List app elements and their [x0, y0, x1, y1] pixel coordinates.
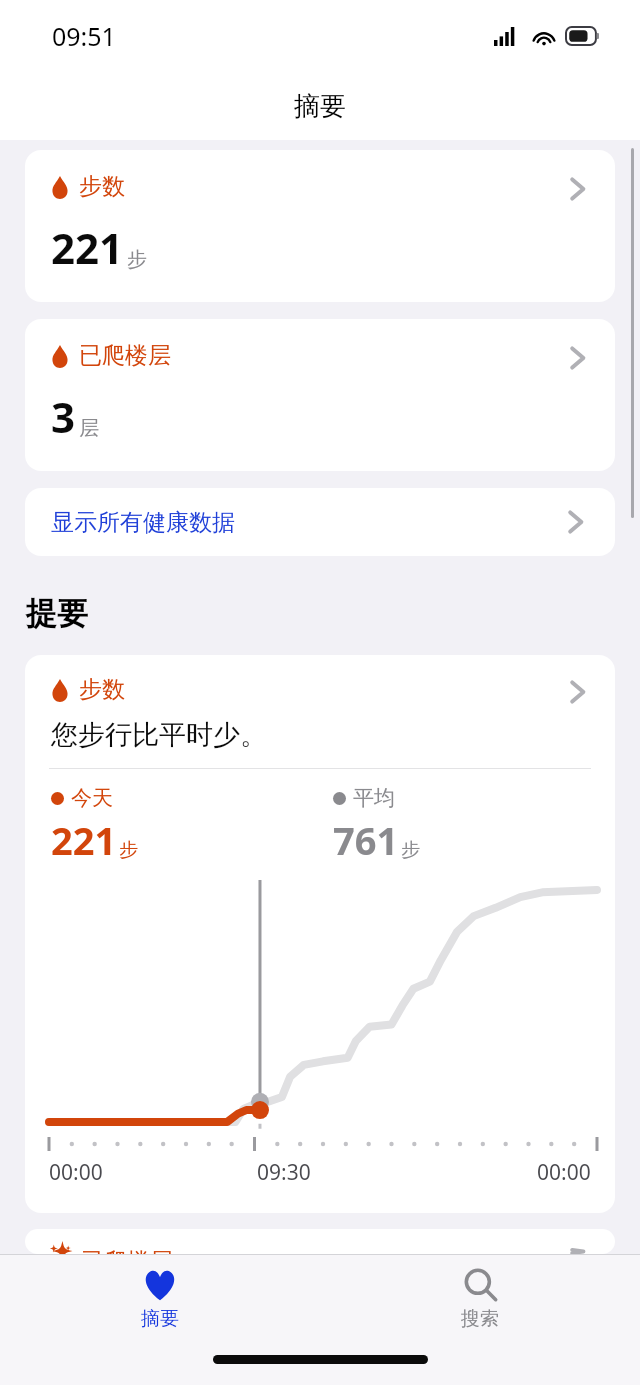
staticText: 步: [127, 247, 147, 272]
staticText: 已爬楼层: [79, 341, 171, 370]
staticText: 步: [401, 838, 420, 862]
staticText: 09:30: [257, 1158, 311, 1187]
button[interactable]: 步数: [25, 150, 615, 302]
staticText: 00:00: [49, 1158, 103, 1187]
button[interactable]: 显示所有健康数据: [25, 488, 615, 556]
staticText: 3: [51, 388, 76, 445]
staticText: 步数: [79, 675, 125, 704]
staticText: 搜索: [461, 1307, 499, 1331]
staticText: 平均: [353, 785, 395, 811]
staticText: 已爬楼层: [81, 1247, 173, 1254]
other: 搜索: [462, 1269, 498, 1301]
staticText: 步数: [79, 172, 125, 201]
staticText: 今天: [71, 785, 113, 811]
staticText: 显示所有健康数据: [51, 508, 235, 537]
staticText: 09:51: [52, 19, 116, 53]
button[interactable]: 搜索: [320, 1255, 640, 1345]
staticText: 您步行比平时少。: [51, 718, 267, 752]
staticText: 00:00: [537, 1158, 591, 1187]
staticText: 摘要: [141, 1307, 179, 1331]
button[interactable]: 步数: [25, 655, 615, 1213]
button[interactable]: 摘要: [0, 1255, 320, 1345]
button[interactable]: 已爬楼层: [25, 319, 615, 471]
staticText: 221: [51, 219, 124, 276]
staticText: 提要: [26, 594, 88, 633]
staticText: 步: [119, 838, 138, 862]
staticText: 761: [333, 814, 399, 866]
staticText: 摘要: [294, 90, 346, 123]
staticText: 层: [79, 416, 99, 441]
staticText: 221: [51, 814, 117, 866]
button[interactable]: 已爬楼层: [25, 1229, 615, 1254]
